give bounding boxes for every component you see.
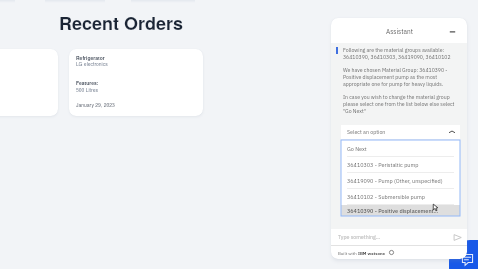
staticText: We have chosen Material Group: 36410390 … [343,67,459,88]
staticText: 36410303 - Peristaltic pump [347,161,419,168]
staticText: 36410390 - Positive displacement… [347,207,439,214]
button[interactable]: Send [453,233,462,242]
staticText: Select an option [347,129,386,136]
button[interactable]: 36410102 - Submersible pump [341,189,460,204]
staticText: 36419090 - Pump (Other, unspecified) [347,177,443,184]
staticText: Following are the material groups availa… [343,47,459,61]
staticText: In case you wish to change the material … [343,94,459,115]
staticText: Go Next [347,145,367,152]
staticText: Recent Orders [59,10,184,36]
button[interactable]: 36410303 - Peristaltic pump [341,157,460,172]
staticText: Features: [76,79,99,86]
staticText: 500 Litres [76,86,98,93]
button[interactable]: Open assistant [449,240,478,269]
button[interactable]: Refrigerator [69,49,203,116]
staticText: Type something... [338,234,381,241]
staticText: Refrigerator [76,54,105,61]
button[interactable]: 36410390 - Positive displacement… [341,205,460,216]
staticText: Built with [338,250,358,256]
button[interactable]: Select an option [341,125,460,139]
button[interactable]: Minimize [449,26,459,36]
staticText: January 29, 2023 [76,101,115,108]
button[interactable]: Go Next [341,140,460,156]
staticText: 36410102 - Submersible pump [347,193,425,200]
button[interactable]: 36419090 - Pump (Other, unspecified) [341,173,460,188]
staticText: LG electronics [76,60,108,67]
staticText: IBM watsonx [358,250,386,256]
staticText: Assistant [386,27,413,35]
